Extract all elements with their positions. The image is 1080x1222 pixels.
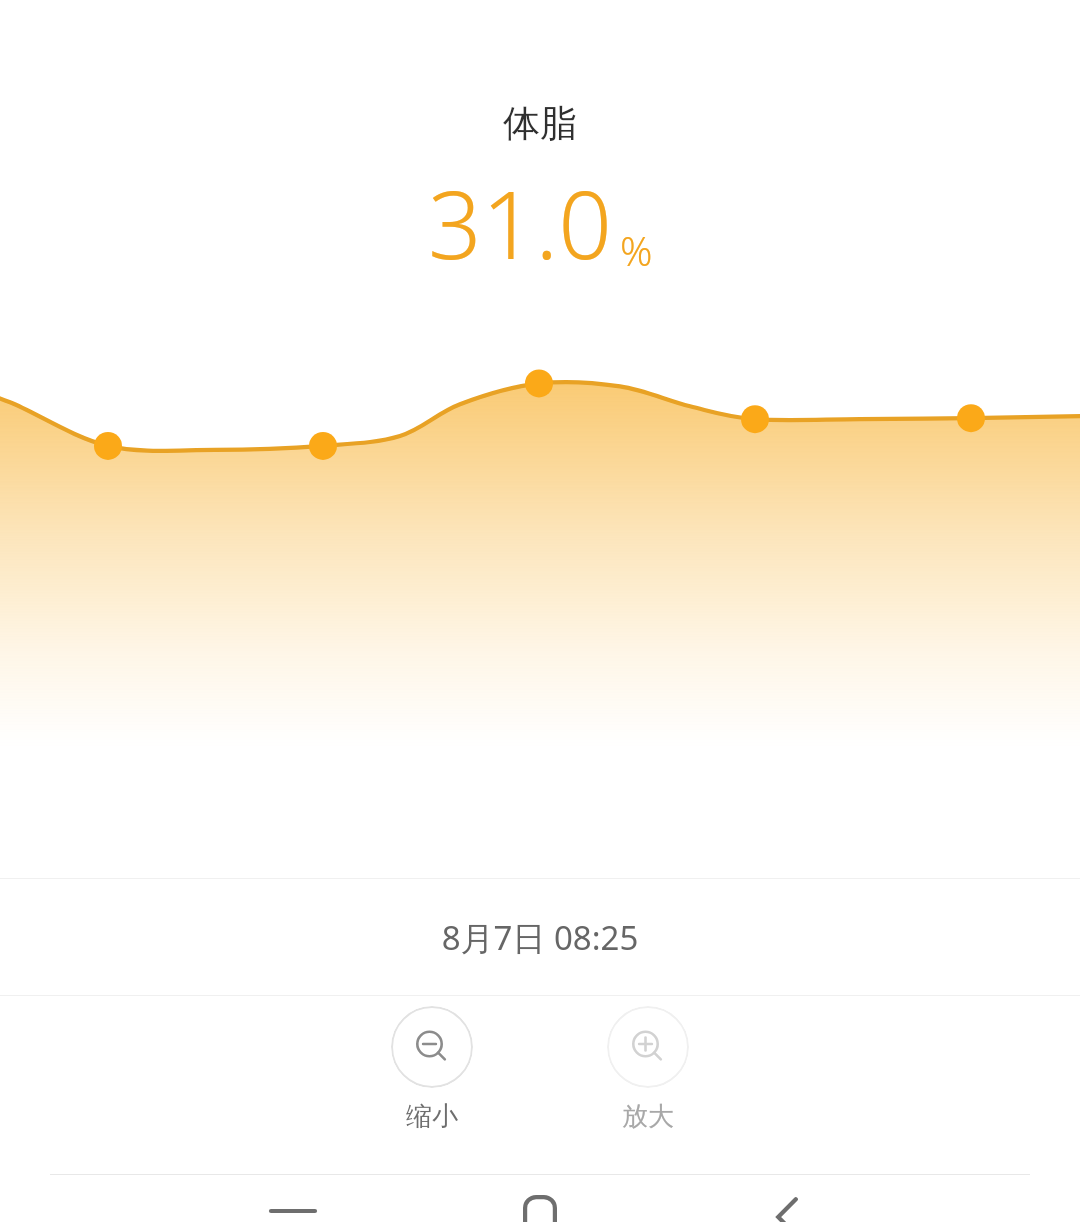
button[interactable]: 缩小 Zoom out [362, 1002, 502, 1137]
staticText: 体脂 [0, 100, 1080, 147]
staticText: 8月7日 08:25 [0, 915, 1080, 960]
button[interactable]: Recent apps [245, 1193, 341, 1222]
staticText: 放大 [622, 1100, 674, 1133]
button[interactable]: Home [492, 1193, 588, 1222]
staticText: 31.0 [428, 159, 612, 287]
staticText: 缩小 [406, 1100, 458, 1133]
button[interactable]: 放大 Zoom in [578, 1002, 718, 1137]
staticText: % [620, 223, 653, 277]
button[interactable]: Back [739, 1193, 835, 1222]
